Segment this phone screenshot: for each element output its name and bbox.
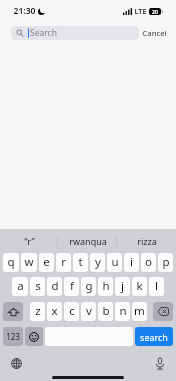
- staticText: 20: [152, 8, 158, 15]
- staticText: u: [111, 254, 119, 270]
- staticText: 21:30: [13, 5, 36, 17]
- button[interactable]: 123: [3, 327, 23, 346]
- button[interactable]: a: [12, 277, 28, 296]
- button[interactable]: e: [39, 253, 54, 272]
- staticText: b: [102, 303, 110, 319]
- button[interactable]: Dictate: [152, 355, 168, 371]
- staticText: Cancel: [142, 28, 167, 39]
- staticText: k: [136, 278, 143, 294]
- button[interactable]: y: [90, 253, 105, 272]
- staticText: o: [145, 254, 152, 270]
- button[interactable]: h: [98, 277, 113, 296]
- button[interactable]: v: [81, 302, 96, 321]
- staticText: g: [85, 278, 93, 294]
- staticText: n: [119, 303, 127, 319]
- staticText: t: [78, 254, 83, 270]
- staticText: p: [162, 254, 170, 270]
- staticText: LTE: [134, 6, 147, 16]
- staticText: x: [51, 303, 58, 319]
- staticText: c: [69, 303, 75, 319]
- staticText: r: [61, 254, 66, 270]
- staticText: w: [24, 254, 34, 270]
- button[interactable]: t: [73, 253, 88, 272]
- button[interactable]: Backspace: [153, 302, 173, 321]
- staticText: Search: [30, 27, 57, 39]
- staticText: y: [95, 254, 101, 270]
- button[interactable]: rwanqua: [58, 229, 117, 253]
- button[interactable]: l: [149, 277, 164, 296]
- staticText: j: [121, 278, 124, 294]
- button[interactable]: k: [132, 277, 147, 296]
- button[interactable]: Emoji: [25, 327, 43, 346]
- button[interactable]: f: [64, 277, 79, 296]
- staticText: v: [86, 303, 92, 319]
- button[interactable]: c: [64, 302, 79, 321]
- button[interactable]: n: [115, 302, 130, 321]
- button[interactable]: “r”: [0, 229, 58, 253]
- button[interactable]: Change keyboard: [8, 355, 24, 371]
- staticText: l: [155, 278, 158, 294]
- staticText: z: [35, 303, 41, 319]
- button[interactable]: search: [135, 327, 173, 346]
- staticText: h: [102, 278, 110, 294]
- button[interactable]: g: [81, 277, 96, 296]
- staticText: “r”: [24, 235, 35, 247]
- staticText: a: [17, 278, 24, 294]
- staticText: e: [43, 254, 50, 270]
- button[interactable]: Shift: [3, 302, 23, 321]
- button[interactable]: w: [21, 253, 37, 272]
- staticText: q: [7, 254, 15, 270]
- button[interactable]: z: [30, 302, 45, 321]
- button[interactable]: q: [3, 253, 19, 272]
- button[interactable]: j: [115, 277, 130, 296]
- staticText: rizza: [137, 235, 157, 247]
- button[interactable]: Search: [11, 26, 139, 40]
- staticText: f: [70, 278, 74, 294]
- staticText: i: [130, 254, 133, 270]
- button[interactable]: i: [124, 253, 139, 272]
- staticText: d: [51, 278, 59, 294]
- button[interactable]: u: [107, 253, 122, 272]
- button[interactable]: rizza: [117, 229, 176, 253]
- button[interactable]: o: [141, 253, 156, 272]
- staticText: s: [35, 278, 41, 294]
- button[interactable]: s: [30, 277, 45, 296]
- button[interactable]: p: [158, 253, 173, 272]
- staticText: rwanqua: [69, 235, 107, 247]
- button[interactable]: d: [47, 277, 62, 296]
- staticText: search: [140, 331, 168, 343]
- button[interactable]: r: [56, 253, 71, 272]
- button[interactable]: Cancel: [139, 22, 169, 44]
- button[interactable]: b: [98, 302, 113, 321]
- staticText: 123: [6, 331, 20, 342]
- staticText: m: [134, 303, 145, 319]
- button[interactable]: m: [132, 302, 147, 321]
- button[interactable]: x: [47, 302, 62, 321]
